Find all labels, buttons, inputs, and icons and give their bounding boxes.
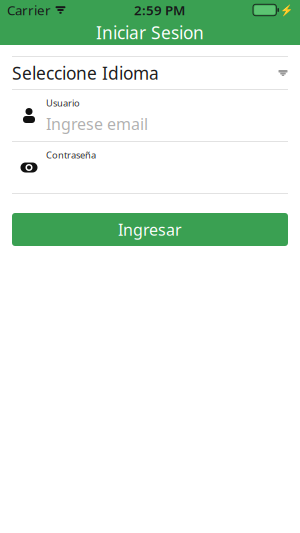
- staticText: Seleccione Idioma: [12, 61, 159, 84]
- staticText: Contraseña: [46, 149, 96, 161]
- staticText: 2:59 PM: [134, 1, 185, 19]
- staticText: ⚡: [280, 4, 293, 16]
- button[interactable]: Seleccione Idioma: [0, 57, 300, 89]
- staticText: Carrier: [7, 1, 51, 19]
- staticText: Iniciar Sesion: [96, 21, 204, 44]
- button[interactable]: Ingresar: [12, 213, 288, 246]
- staticText: Ingrese email: [46, 113, 148, 134]
- staticText: Ingresar: [118, 219, 182, 240]
- button[interactable]: Contraseña: [0, 142, 300, 193]
- staticText: Usuario: [46, 97, 80, 109]
- button[interactable]: Usuario: [0, 90, 300, 141]
